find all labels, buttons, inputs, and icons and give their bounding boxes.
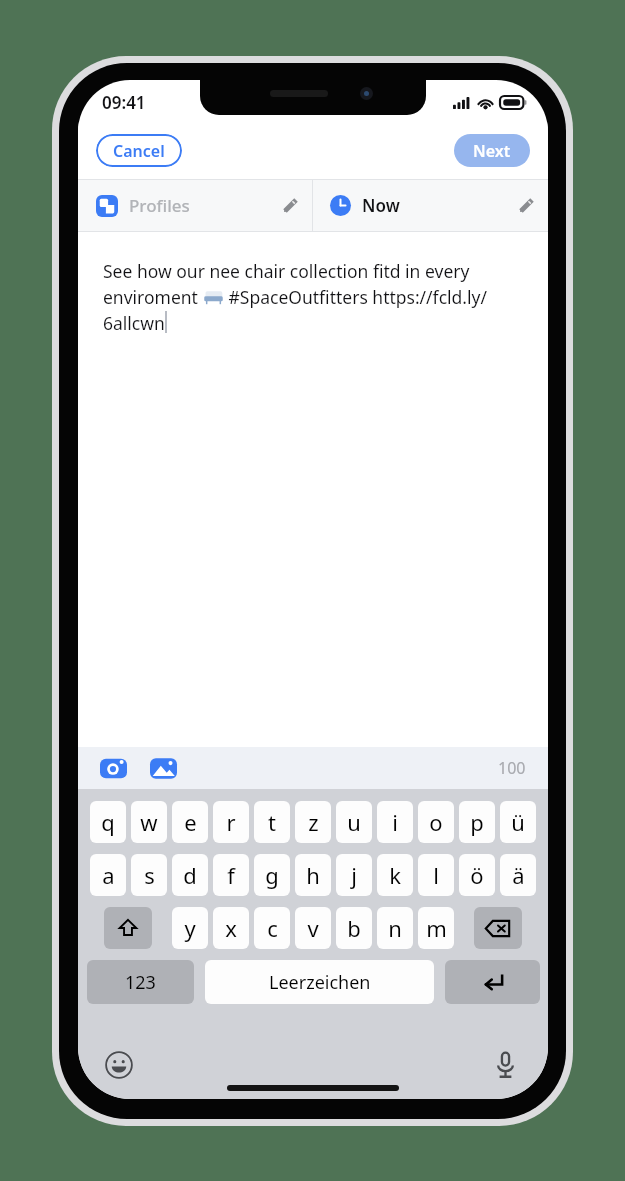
staticText: u (347, 807, 361, 837)
staticText: Next (473, 140, 511, 162)
staticText: ü (511, 807, 525, 837)
staticText: enviroment (103, 285, 203, 309)
staticText: 100 (498, 757, 526, 779)
button[interactable]: x (213, 907, 249, 949)
button[interactable]: c (254, 907, 290, 949)
staticText: z (308, 807, 319, 837)
button[interactable]: u (336, 801, 372, 843)
button[interactable]: w (131, 801, 167, 843)
staticText: q (101, 807, 115, 837)
button[interactable]: n (377, 907, 413, 949)
button[interactable]: d (172, 854, 208, 896)
staticText: Profiles (129, 194, 190, 217)
staticText: n (388, 913, 402, 943)
staticText: v (307, 913, 319, 943)
staticText: d (183, 860, 197, 890)
staticText: x (225, 913, 237, 943)
button[interactable]: Photo library (148, 753, 178, 783)
staticText: w (140, 807, 158, 837)
staticText: c (267, 913, 278, 943)
staticText: y (184, 913, 196, 943)
staticText: Cancel (113, 140, 165, 162)
staticText: j (351, 860, 357, 890)
button[interactable]: ä (500, 854, 536, 896)
button[interactable]: f (213, 854, 249, 896)
button[interactable]: b (336, 907, 372, 949)
other: Edit (516, 196, 536, 216)
staticText: k (389, 860, 401, 890)
button[interactable]: Shift (104, 907, 152, 949)
staticText: #SpaceOutfitters https://fcld.ly/ (224, 285, 487, 309)
button[interactable]: y (172, 907, 208, 949)
staticText: l (433, 860, 439, 890)
button[interactable]: Leerzeichen (205, 960, 434, 1004)
staticText: b (347, 913, 361, 943)
staticText: s (144, 860, 155, 890)
button[interactable]: h (295, 854, 331, 896)
staticText: p (470, 807, 484, 837)
button[interactable]: Profiles (78, 180, 312, 231)
staticText: a (102, 860, 115, 890)
button[interactable]: Now (313, 180, 548, 231)
staticText: 123 (125, 970, 156, 995)
button[interactable]: v (295, 907, 331, 949)
staticText: t (268, 807, 276, 837)
staticText: f (227, 860, 235, 890)
staticText: Now (362, 194, 400, 217)
staticText: h (306, 860, 320, 890)
staticText: r (226, 807, 236, 837)
button[interactable]: See how our nee chair collection fitd in… (78, 232, 548, 747)
button[interactable]: p (459, 801, 495, 843)
staticText: o (429, 807, 443, 837)
button[interactable]: z (295, 801, 331, 843)
button[interactable]: Next (454, 134, 530, 167)
button[interactable]: r (213, 801, 249, 843)
staticText: m (426, 913, 447, 943)
button[interactable]: q (90, 801, 126, 843)
button[interactable]: Return (445, 960, 540, 1004)
button[interactable]: e (172, 801, 208, 843)
button[interactable]: j (336, 854, 372, 896)
staticText: g (265, 860, 279, 890)
staticText: See how our nee chair collection fitd in… (103, 259, 470, 283)
button[interactable]: ö (459, 854, 495, 896)
button[interactable]: Backspace (474, 907, 522, 949)
other: Now (330, 195, 351, 216)
button[interactable]: a (90, 854, 126, 896)
staticText: ö (470, 860, 484, 890)
staticText: ä (512, 860, 525, 890)
button[interactable]: m (418, 907, 454, 949)
button[interactable]: 123 (87, 960, 194, 1004)
button[interactable]: t (254, 801, 290, 843)
button[interactable]: s (131, 854, 167, 896)
staticText: 09:41 (102, 91, 146, 114)
staticText: i (392, 807, 398, 837)
button[interactable]: Dictation (486, 1046, 524, 1084)
staticText: Leerzeichen (269, 970, 371, 995)
button[interactable]: ü (500, 801, 536, 843)
button[interactable]: g (254, 854, 290, 896)
staticText: e (184, 807, 197, 837)
button[interactable]: o (418, 801, 454, 843)
button[interactable]: Emoji (100, 1046, 138, 1084)
button[interactable]: l (418, 854, 454, 896)
button[interactable]: k (377, 854, 413, 896)
staticText: 6allcwn (103, 311, 165, 335)
button[interactable]: Cancel (96, 134, 182, 167)
other: Edit (280, 196, 300, 216)
button[interactable]: i (377, 801, 413, 843)
other: Profiles (96, 195, 118, 217)
button[interactable]: Camera (98, 753, 128, 783)
